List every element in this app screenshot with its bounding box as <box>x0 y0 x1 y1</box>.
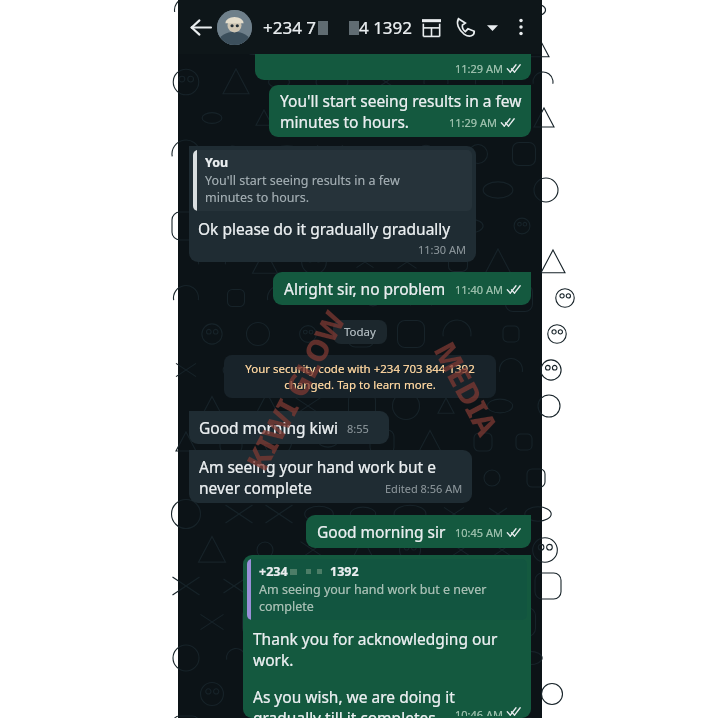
staticText: 11:29 AM <box>455 61 503 76</box>
staticText: 4 1392 <box>359 16 413 39</box>
staticText: 11:29 AM <box>449 115 497 130</box>
staticText: 1392 <box>330 563 359 580</box>
staticText: KIWI GLOW <box>236 304 355 477</box>
staticText: work. <box>253 649 294 670</box>
button[interactable]: 11:29 AM <box>255 54 531 80</box>
button[interactable]: Call options <box>482 17 503 38</box>
staticText: 10:45 AM <box>455 525 503 540</box>
staticText: complete <box>259 598 314 615</box>
button[interactable]: Business profile <box>414 10 448 44</box>
button[interactable]: +234 <box>243 555 531 718</box>
button[interactable]: Call <box>448 10 482 44</box>
staticText: Alright sir, no problem <box>284 278 446 299</box>
button[interactable]: Profile photo <box>217 10 252 45</box>
button[interactable]: Good morning kiwi <box>189 411 389 444</box>
staticText: gradually till it completes <box>253 707 436 718</box>
staticText: minutes to hours. <box>280 111 409 132</box>
button[interactable]: Your security code with +234 703 844 139… <box>224 355 496 398</box>
button[interactable]: You'll start seeing results in a few <box>269 85 531 137</box>
button[interactable]: More options <box>503 9 539 45</box>
staticText: minutes to hours. <box>205 189 310 206</box>
button[interactable]: Alright sir, no problem <box>273 272 531 305</box>
staticText: 10:46 AM <box>455 707 503 716</box>
staticText: +234 <box>259 563 288 580</box>
staticText: You'll start seeing results in a few <box>280 90 522 111</box>
staticText: Good morning sir <box>317 521 446 542</box>
staticText: You <box>205 154 229 171</box>
staticText: As you wish, we are doing it <box>253 686 455 707</box>
staticText: MEDIA <box>425 334 508 443</box>
staticText: Good morning kiwi <box>199 417 339 438</box>
staticText: 8:55 AM <box>347 421 380 436</box>
staticText: Your security code with +234 703 844 139… <box>233 361 487 392</box>
staticText: Am seeing your hand work but e <box>199 456 436 477</box>
staticText: +234 7 <box>263 16 317 39</box>
staticText: Edited 8:56 AM <box>385 481 463 496</box>
staticText: You'll start seeing results in a few <box>205 172 400 189</box>
staticText: Today <box>344 324 376 340</box>
staticText: Am seeing your hand work but e never <box>259 581 487 598</box>
button[interactable]: You <box>189 146 476 262</box>
staticText: Thank you for acknowledging our <box>253 628 498 649</box>
button[interactable]: +234 7 <box>263 16 414 39</box>
staticText: never complete <box>199 477 312 498</box>
button[interactable]: Am seeing your hand work but e <box>189 450 472 503</box>
button[interactable]: Back <box>183 10 217 44</box>
staticText: 11:30 AM <box>418 242 466 257</box>
staticText: Ok please do it gradually gradually <box>198 218 451 239</box>
button[interactable]: Good morning sir <box>306 515 531 548</box>
staticText: 11:40 AM <box>455 282 503 297</box>
